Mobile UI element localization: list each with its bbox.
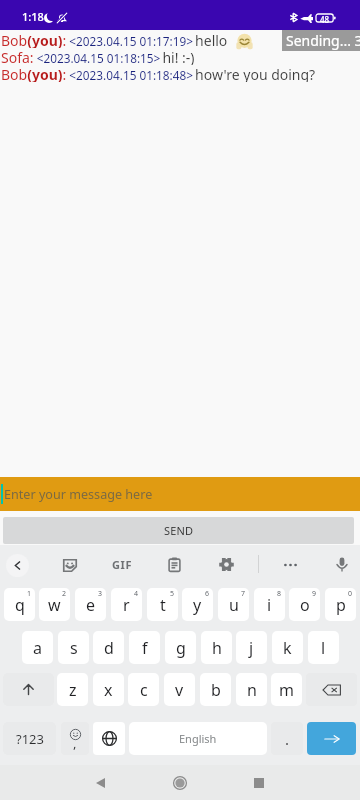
staticText: 9 bbox=[312, 589, 317, 599]
staticText: k bbox=[283, 637, 292, 659]
staticText: 7 bbox=[241, 589, 246, 599]
button[interactable]: o bbox=[289, 588, 320, 621]
staticText: v bbox=[175, 679, 184, 701]
staticText: 1 bbox=[27, 589, 32, 599]
button[interactable]: d bbox=[93, 631, 124, 664]
button[interactable]: Home bbox=[160, 765, 200, 800]
button[interactable]: u bbox=[218, 588, 249, 621]
button[interactable]: Enter your message here bbox=[0, 477, 360, 511]
button[interactable]: w bbox=[39, 588, 70, 621]
button[interactable]: t bbox=[147, 588, 178, 621]
button[interactable]: f bbox=[129, 631, 160, 664]
button[interactable] bbox=[3, 673, 54, 706]
button[interactable]: j bbox=[236, 631, 267, 664]
staticText: 6 bbox=[205, 589, 210, 599]
staticText: h bbox=[212, 637, 222, 659]
button[interactable]: k bbox=[272, 631, 303, 664]
staticText: Bob(you): <2023.04.15 01:17:19> hello bbox=[1, 31, 228, 48]
staticText: 1:18 bbox=[22, 9, 44, 24]
staticText: d bbox=[104, 637, 114, 659]
button[interactable]: s bbox=[58, 631, 89, 664]
button[interactable]: Backspace bbox=[306, 673, 357, 706]
button[interactable]: Recent apps bbox=[239, 765, 279, 800]
button[interactable]: z bbox=[57, 673, 88, 706]
button[interactable]: m bbox=[271, 673, 302, 706]
button[interactable]: Change language bbox=[93, 722, 125, 755]
staticText: z bbox=[69, 679, 77, 701]
staticText: 5 bbox=[170, 589, 175, 599]
button[interactable]: x bbox=[93, 673, 124, 706]
button[interactable]: SEND bbox=[3, 517, 354, 544]
button[interactable]: c bbox=[128, 673, 159, 706]
button[interactable]: Back bbox=[80, 765, 120, 800]
staticText: 48 bbox=[320, 14, 330, 25]
button[interactable]: Enter bbox=[307, 722, 356, 755]
staticText: Sending... 3 bbox=[286, 31, 360, 50]
staticText: q bbox=[15, 594, 25, 616]
button[interactable]: b bbox=[200, 673, 231, 706]
staticText: e bbox=[86, 594, 96, 616]
staticText: a bbox=[33, 637, 42, 659]
button[interactable]: i bbox=[254, 588, 285, 621]
button[interactable]: Clipboard bbox=[164, 554, 185, 575]
staticText: Bob(you): <2023.04.15 01:18:48> how're y… bbox=[1, 65, 316, 82]
button[interactable]: Voice input bbox=[331, 554, 352, 575]
button[interactable]: . bbox=[271, 722, 303, 755]
button[interactable]: Back bbox=[6, 554, 29, 577]
button[interactable]: More options bbox=[280, 554, 301, 575]
staticText: i bbox=[267, 594, 272, 616]
staticText: GIF bbox=[112, 557, 133, 572]
button[interactable]: v bbox=[164, 673, 195, 706]
staticText: . bbox=[285, 729, 290, 749]
button[interactable]: Stickers bbox=[59, 554, 80, 575]
staticText: p bbox=[336, 594, 346, 616]
staticText: , bbox=[73, 734, 77, 752]
staticText: English bbox=[179, 731, 217, 746]
button[interactable]: GIF bbox=[110, 554, 134, 575]
staticText: w bbox=[48, 594, 61, 616]
button[interactable]: a bbox=[22, 631, 53, 664]
staticText: Sofa: <2023.04.15 01:18:15> hi! :-) bbox=[1, 48, 195, 65]
button[interactable]: Emoji bbox=[61, 722, 89, 755]
button[interactable]: n bbox=[236, 673, 267, 706]
staticText: ?123 bbox=[16, 730, 44, 748]
staticText: 3 bbox=[98, 589, 103, 599]
button[interactable]: Settings bbox=[216, 554, 237, 575]
button[interactable]: English bbox=[129, 722, 267, 755]
button[interactable]: e bbox=[75, 588, 106, 621]
staticText: Enter your message here bbox=[4, 486, 153, 503]
button[interactable]: h bbox=[201, 631, 232, 664]
button[interactable]: l bbox=[308, 631, 339, 664]
staticText: u bbox=[229, 594, 239, 616]
staticText: 2 bbox=[62, 589, 67, 599]
staticText: b bbox=[211, 679, 221, 701]
staticText: t bbox=[160, 594, 166, 616]
staticText: c bbox=[140, 679, 148, 701]
button[interactable]: p bbox=[325, 588, 356, 621]
button[interactable]: y bbox=[182, 588, 213, 621]
staticText: n bbox=[247, 679, 257, 701]
button[interactable]: q bbox=[4, 588, 35, 621]
button[interactable]: ?123 bbox=[3, 722, 56, 755]
button[interactable]: g bbox=[165, 631, 196, 664]
staticText: y bbox=[193, 594, 202, 616]
staticText: l bbox=[321, 637, 326, 659]
staticText: j bbox=[249, 637, 254, 659]
staticText: 8 bbox=[277, 589, 282, 599]
staticText: m bbox=[279, 679, 294, 701]
staticText: r bbox=[123, 594, 130, 616]
button[interactable]: r bbox=[111, 588, 142, 621]
staticText: SEND bbox=[164, 523, 194, 538]
staticText: o bbox=[300, 594, 310, 616]
staticText: 4 bbox=[134, 589, 139, 599]
staticText: f bbox=[142, 637, 148, 659]
staticText: 0 bbox=[348, 589, 353, 599]
staticText: x bbox=[104, 679, 113, 701]
staticText: g bbox=[176, 637, 186, 659]
staticText: s bbox=[70, 637, 78, 659]
